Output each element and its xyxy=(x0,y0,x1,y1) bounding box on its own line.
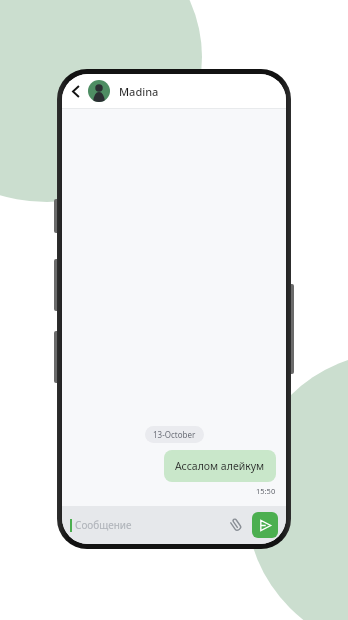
button[interactable]: Сообщение xyxy=(75,518,225,532)
button[interactable] xyxy=(88,80,110,102)
button[interactable]: Send xyxy=(252,512,278,538)
button[interactable]: Back xyxy=(66,81,86,101)
staticText: 15:50 xyxy=(256,486,276,496)
button[interactable]: Attach file xyxy=(225,514,247,536)
staticText: Ассалом алейкум xyxy=(175,459,265,473)
staticText: 13-October xyxy=(153,429,196,440)
staticText: Madina xyxy=(119,84,159,99)
staticText: Сообщение xyxy=(75,518,132,532)
button[interactable]: 13-October xyxy=(145,426,204,443)
button[interactable]: Ассалом алейкум xyxy=(164,450,276,482)
